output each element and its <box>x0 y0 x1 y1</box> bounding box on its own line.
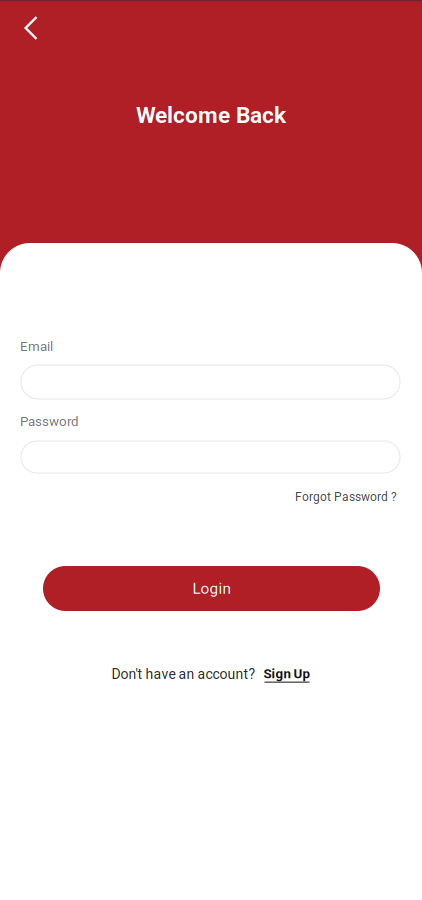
button[interactable]: Back <box>12 9 50 47</box>
button[interactable]: Email <box>21 365 400 399</box>
staticText: Don't have an account? <box>111 666 255 682</box>
staticText: Forgot Password ? <box>295 490 397 504</box>
staticText: Welcome Back <box>136 102 286 129</box>
button[interactable]: Sign Up <box>263 666 310 683</box>
button[interactable]: Login <box>43 566 380 611</box>
staticText: Login <box>192 579 230 597</box>
button[interactable]: Forgot Password ? <box>295 489 397 505</box>
staticText: Email <box>20 339 53 354</box>
staticText: Password <box>20 414 79 429</box>
button[interactable]: Password <box>21 441 400 473</box>
staticText: Sign Up <box>263 666 310 682</box>
